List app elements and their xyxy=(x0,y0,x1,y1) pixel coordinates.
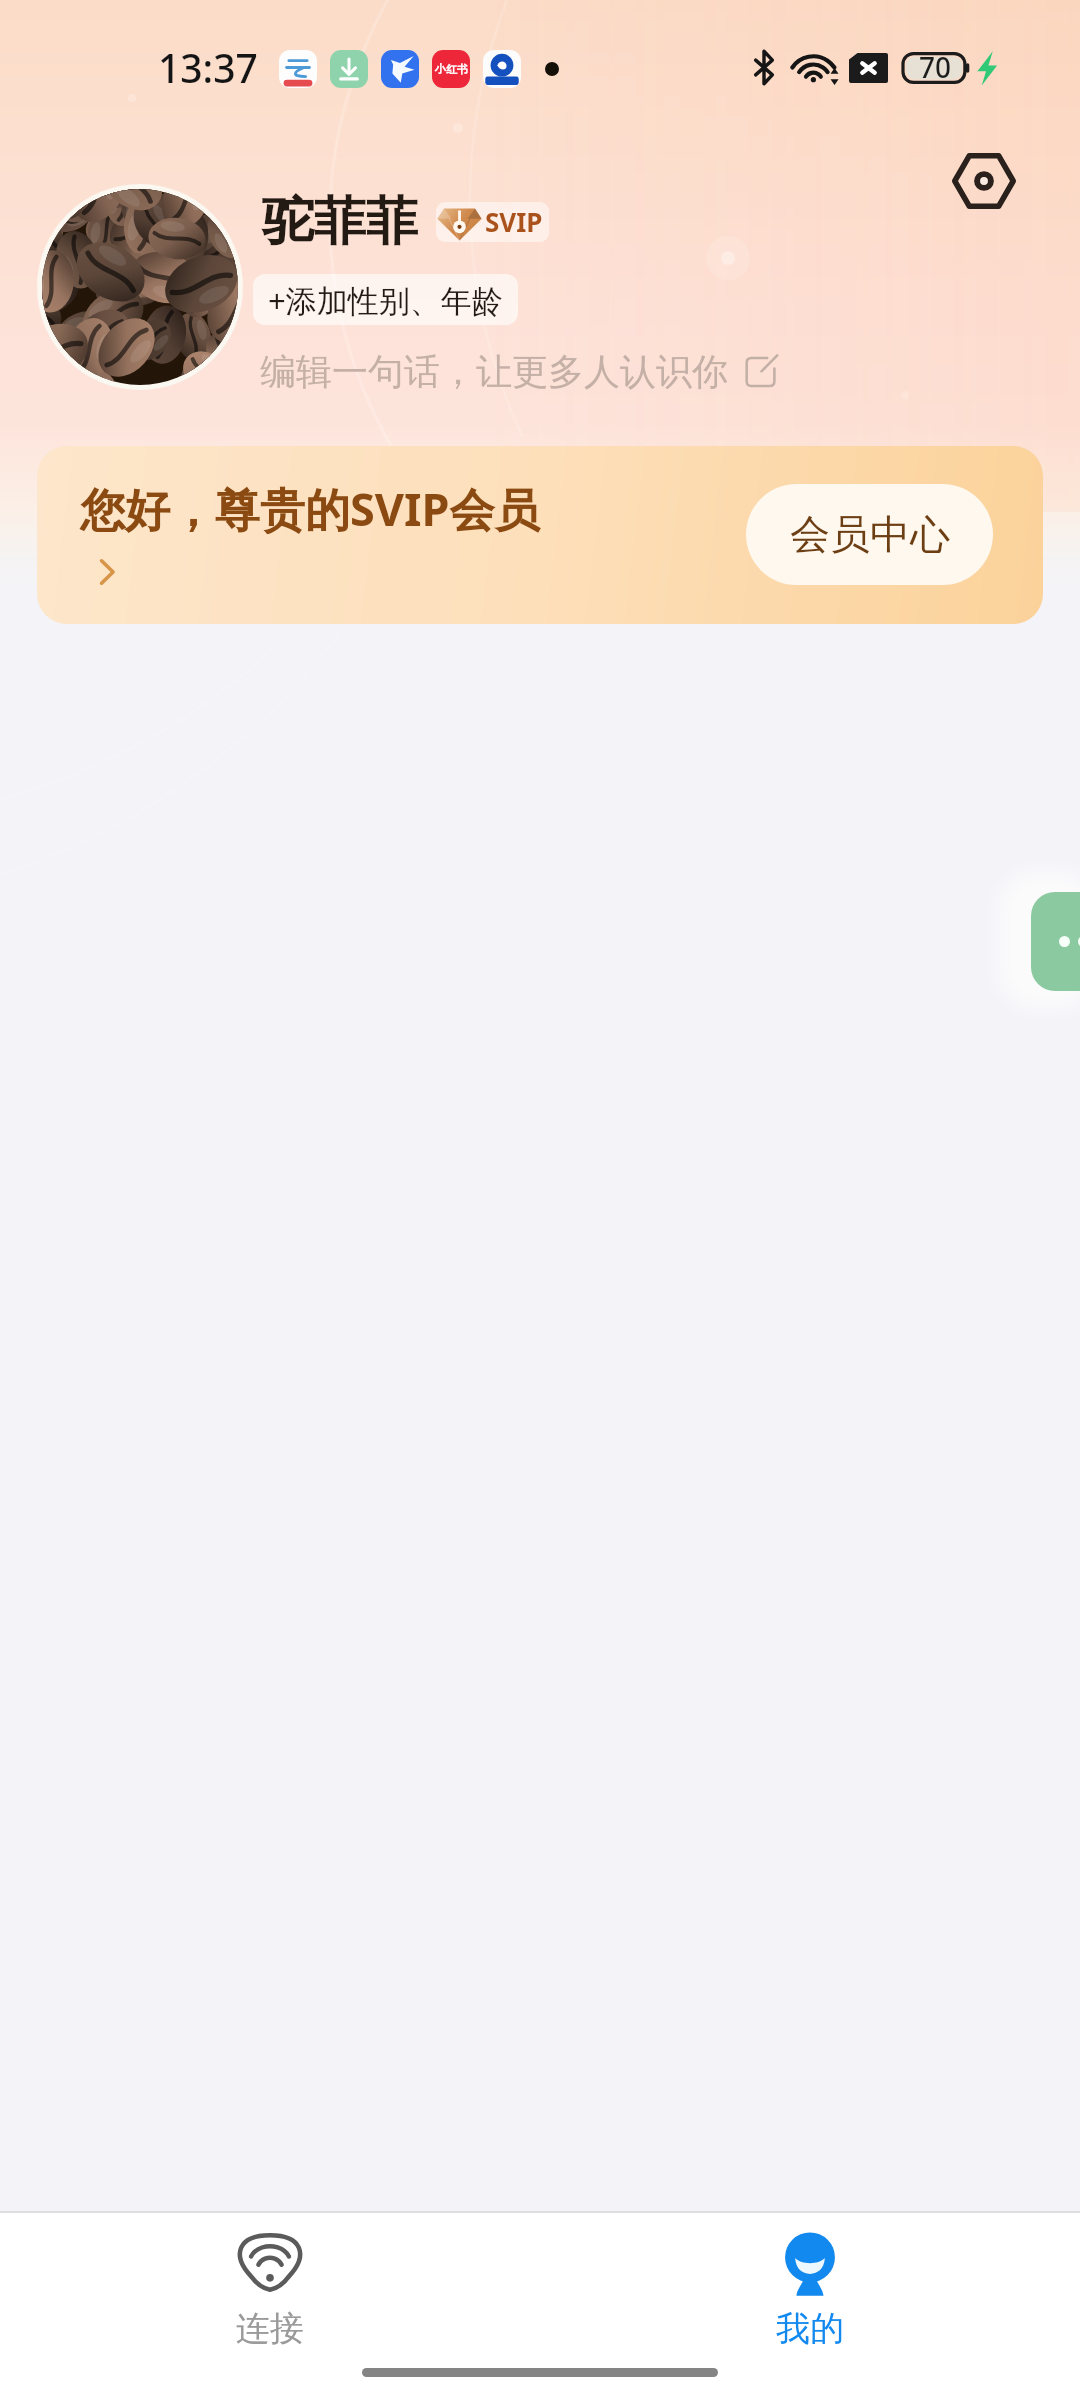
button[interactable]: Profile photo xyxy=(37,184,243,390)
staticText: 您好，尊贵的SVIP会员 xyxy=(80,478,540,539)
button[interactable]: 连接 xyxy=(0,2213,540,2400)
staticText: SVIP xyxy=(485,204,543,239)
staticText: 驼菲菲 xyxy=(262,189,418,255)
staticText: 70 xyxy=(919,48,952,86)
button[interactable]: 会员中心 xyxy=(746,484,993,585)
staticText: 连接 xyxy=(236,2307,304,2350)
staticText: +添加性别、年龄 xyxy=(268,279,503,321)
staticText: 小红书 xyxy=(435,62,468,76)
staticText: 编辑一句话，让更多人认识你 xyxy=(260,349,728,394)
button[interactable]: +添加性别、年龄 xyxy=(253,274,518,325)
button[interactable]: More actions xyxy=(1031,892,1080,991)
button[interactable]: SVIP membership xyxy=(436,202,549,242)
staticText: 会员中心 xyxy=(790,509,950,559)
staticText: 13:37 xyxy=(158,41,258,94)
button[interactable]: 您好，尊贵的SVIP会员 xyxy=(37,446,1043,624)
button[interactable]: 编辑一句话，让更多人认识你 xyxy=(260,349,778,394)
button[interactable]: Settings xyxy=(950,147,1018,215)
button[interactable]: 我的 xyxy=(540,2213,1080,2400)
staticText: 我的 xyxy=(776,2307,844,2350)
